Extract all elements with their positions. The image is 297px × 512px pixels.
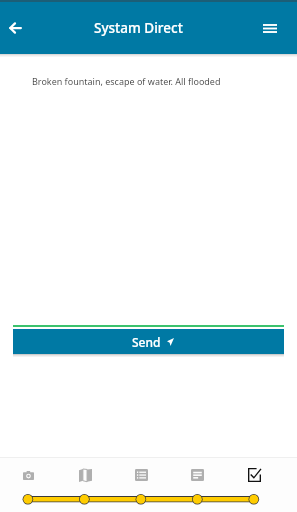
button[interactable]: Send: [13, 329, 284, 354]
button[interactable]: Camera: [4, 460, 52, 490]
button[interactable]: Done: [230, 460, 278, 490]
staticText: Systam Direct: [94, 19, 183, 37]
button[interactable]: Menu: [243, 2, 297, 54]
button[interactable]: Back: [0, 2, 31, 54]
staticText: Send: [132, 334, 161, 350]
staticText: Broken fountain, escape of water. All fl…: [32, 75, 221, 87]
button[interactable]: List: [117, 460, 165, 490]
button[interactable]: Map: [61, 460, 109, 490]
button[interactable]: Notes: [173, 460, 221, 490]
